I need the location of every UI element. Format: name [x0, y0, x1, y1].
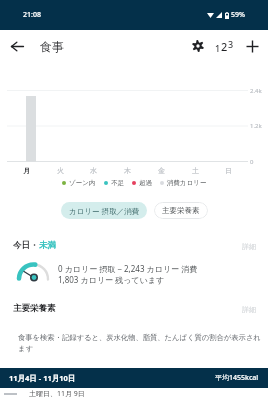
staticText: 不足 [111, 179, 124, 187]
staticText: 未満 [39, 240, 56, 251]
staticText: 今日・ [13, 240, 39, 251]
staticText: 詳細 [242, 305, 256, 314]
button[interactable]: Settings [186, 34, 210, 58]
staticText: 0 [250, 158, 254, 166]
staticText: 消費カロリー [167, 179, 207, 187]
staticText: 詳細 [242, 242, 256, 251]
staticText: 土曜日、11月 9日 [29, 389, 85, 399]
staticText: 食事 [40, 39, 64, 54]
button[interactable]: カロリー 摂取／消費 [61, 202, 147, 219]
button[interactable]: Add [238, 32, 266, 60]
button[interactable]: 主要栄養素 [154, 202, 208, 219]
staticText: 超過 [139, 179, 152, 187]
button[interactable]: 主要栄養素 [0, 300, 268, 360]
staticText: 11月4日 - 11月10日 [9, 373, 76, 383]
staticText: 主要栄養素 [162, 206, 200, 215]
staticText: カロリー 摂取／消費 [69, 206, 139, 216]
staticText: 金 [158, 166, 165, 175]
staticText: 2 [221, 39, 228, 54]
staticText: 平均1455kcal [215, 373, 259, 383]
staticText: 日 [225, 166, 232, 175]
staticText: 1.2k [250, 122, 262, 130]
button[interactable]: 今日・ [0, 236, 268, 296]
staticText: 59% [231, 10, 245, 20]
staticText: 1,803 カロリー 残っています [58, 274, 165, 285]
staticText: 主要栄養素 [13, 303, 56, 314]
button[interactable]: Units [210, 32, 238, 60]
staticText: 食事を検索・記録すると、炭水化物、脂質、たんぱく質の割合が表示されます [18, 333, 261, 353]
staticText: 火 [57, 166, 64, 175]
staticText: 0 カロリー 摂取 − 2,243 カロリー 消費 [58, 263, 198, 274]
staticText: 月 [23, 166, 30, 175]
button[interactable]: Back [5, 34, 29, 58]
staticText: 1 [215, 42, 221, 54]
staticText: 木 [124, 166, 131, 175]
staticText: 3 [228, 38, 234, 50]
staticText: 土 [192, 166, 199, 175]
staticText: 2.4k [250, 87, 262, 95]
staticText: 21:08 [23, 10, 41, 20]
staticText: ゾーン内 [69, 179, 96, 187]
staticText: 水 [90, 166, 97, 175]
